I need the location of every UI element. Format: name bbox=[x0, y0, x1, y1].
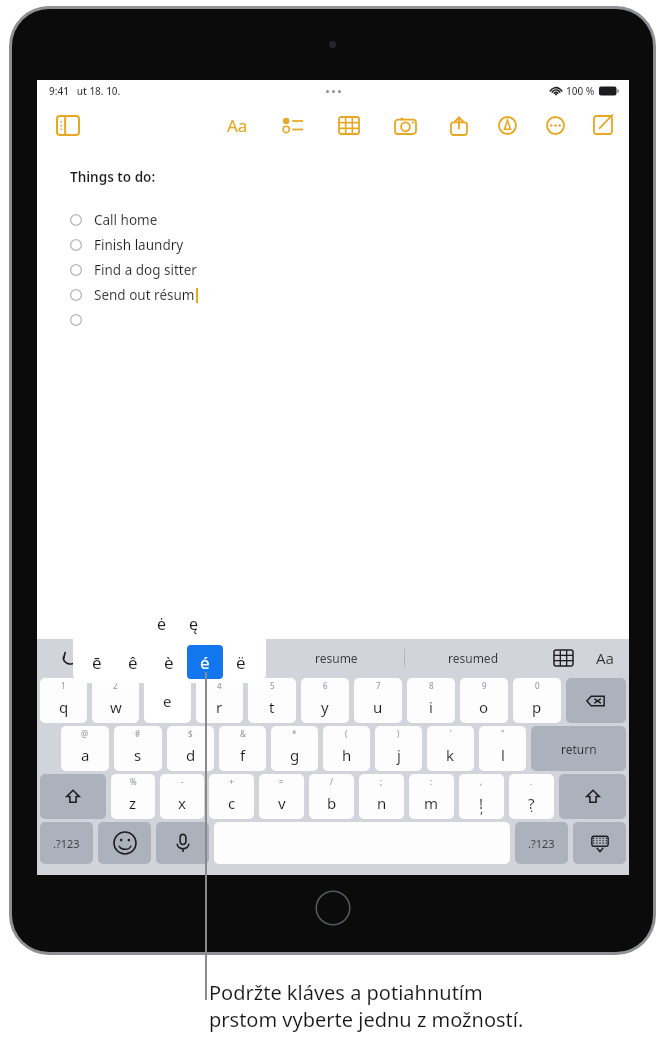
button[interactable]: + bbox=[209, 774, 254, 819]
button[interactable]: Aa bbox=[585, 639, 625, 677]
button[interactable]: / bbox=[309, 774, 354, 819]
button[interactable]: è bbox=[151, 645, 187, 679]
staticText: 1 bbox=[61, 680, 66, 691]
button[interactable]: 4 bbox=[196, 678, 243, 723]
staticText: : bbox=[430, 776, 433, 787]
button[interactable]: Share bbox=[443, 109, 475, 141]
staticText: 100 % bbox=[566, 84, 595, 98]
button[interactable]: % bbox=[111, 774, 155, 819]
staticText: 7 bbox=[376, 680, 381, 691]
staticText: y bbox=[321, 697, 329, 717]
staticText: . bbox=[530, 776, 533, 787]
staticText: Aa bbox=[227, 114, 248, 137]
button[interactable]: Dictate bbox=[156, 822, 209, 864]
staticText: * bbox=[292, 728, 297, 739]
button[interactable]: ; bbox=[359, 774, 404, 819]
staticText: v bbox=[278, 793, 286, 813]
button[interactable]: # bbox=[114, 726, 162, 771]
staticText: é bbox=[200, 651, 210, 674]
button[interactable]: 7 bbox=[354, 678, 402, 723]
button[interactable]: 9 bbox=[460, 678, 508, 723]
button[interactable]: Camera bbox=[388, 108, 422, 142]
staticText: % bbox=[130, 776, 137, 787]
button[interactable]: @ bbox=[61, 726, 109, 771]
staticText: 8 bbox=[429, 680, 434, 691]
button[interactable]: return bbox=[531, 726, 626, 771]
button[interactable]: Markup bbox=[491, 109, 523, 141]
button[interactable]: 1 bbox=[40, 678, 87, 723]
staticText: ; bbox=[380, 776, 383, 787]
button[interactable]: Find a dog sitter bbox=[70, 257, 629, 282]
staticText: - bbox=[181, 776, 184, 787]
button[interactable]: Finish laundry bbox=[70, 232, 629, 257]
button[interactable]: Shift bbox=[559, 774, 626, 819]
button[interactable]: & bbox=[219, 726, 266, 771]
staticText: Send out résum bbox=[94, 286, 195, 304]
button[interactable]: . bbox=[509, 774, 554, 819]
button[interactable]: Table bbox=[541, 639, 585, 677]
staticText: ’ bbox=[450, 728, 452, 739]
button[interactable]: resumed bbox=[405, 639, 541, 677]
button[interactable]: .?123 bbox=[515, 822, 568, 864]
staticText: s bbox=[134, 745, 142, 765]
button[interactable]: ē bbox=[79, 645, 115, 679]
staticText: = bbox=[279, 776, 284, 787]
staticText: ė bbox=[157, 613, 167, 635]
button[interactable]: ) bbox=[375, 726, 422, 771]
button[interactable]: ë bbox=[223, 645, 259, 679]
staticText: 6 bbox=[323, 680, 328, 691]
button[interactable]: $ bbox=[167, 726, 214, 771]
button[interactable]: 8 bbox=[407, 678, 455, 723]
button[interactable]: * bbox=[271, 726, 318, 771]
button[interactable]: 0 bbox=[513, 678, 561, 723]
button[interactable]: ’ bbox=[427, 726, 474, 771]
button[interactable]: Checklist bbox=[276, 108, 310, 142]
button[interactable]: 6 bbox=[301, 678, 349, 723]
button[interactable]: Hide keyboard bbox=[573, 822, 626, 864]
staticText: Call home bbox=[94, 211, 158, 229]
button[interactable]: Emoji bbox=[98, 822, 151, 864]
staticText: Things to do: bbox=[70, 168, 156, 186]
button[interactable]: é bbox=[187, 645, 223, 679]
staticText: resume bbox=[315, 650, 358, 666]
staticText: ? bbox=[528, 793, 535, 813]
button[interactable]: Compose bbox=[587, 109, 619, 141]
button[interactable]: Table bbox=[332, 108, 366, 142]
button[interactable]: Delete bbox=[566, 678, 626, 723]
button[interactable]: ( bbox=[323, 726, 370, 771]
button[interactable]: Undo bbox=[41, 639, 99, 677]
button[interactable]: Shift bbox=[40, 774, 106, 819]
button[interactable]: Text format bbox=[220, 108, 254, 142]
staticText: ë bbox=[236, 651, 246, 674]
button[interactable]: More bbox=[539, 109, 571, 141]
button[interactable]: Call home bbox=[70, 207, 629, 232]
button[interactable]: Send out résum bbox=[70, 282, 629, 307]
button[interactable]: .?123 bbox=[40, 822, 93, 864]
staticText: ( bbox=[345, 728, 348, 739]
staticText: o bbox=[479, 697, 489, 717]
button[interactable]: Sidebar bbox=[51, 108, 85, 142]
button[interactable]: e bbox=[144, 678, 191, 723]
button[interactable]: resume bbox=[269, 639, 404, 677]
staticText: i bbox=[429, 697, 433, 717]
button[interactable]: = bbox=[259, 774, 304, 819]
staticText: # bbox=[135, 728, 141, 739]
button[interactable]: 5 bbox=[248, 678, 296, 723]
staticText: , bbox=[480, 776, 483, 787]
button[interactable]: , bbox=[459, 774, 504, 819]
button[interactable]: : bbox=[409, 774, 454, 819]
button[interactable]: ê bbox=[115, 645, 151, 679]
button[interactable]: " bbox=[479, 726, 526, 771]
staticText: 0 bbox=[535, 680, 540, 691]
staticText: 5 bbox=[270, 680, 275, 691]
staticText: f bbox=[240, 745, 246, 765]
button[interactable]: - bbox=[160, 774, 204, 819]
button[interactable]: 2 bbox=[92, 678, 139, 723]
staticText: c bbox=[228, 793, 236, 813]
staticText: Find a dog sitter bbox=[94, 261, 197, 279]
staticText: 9 bbox=[482, 680, 487, 691]
staticText: .?123 bbox=[53, 836, 80, 851]
staticText: 4 bbox=[217, 680, 222, 691]
staticText: Finish laundry bbox=[94, 236, 184, 254]
